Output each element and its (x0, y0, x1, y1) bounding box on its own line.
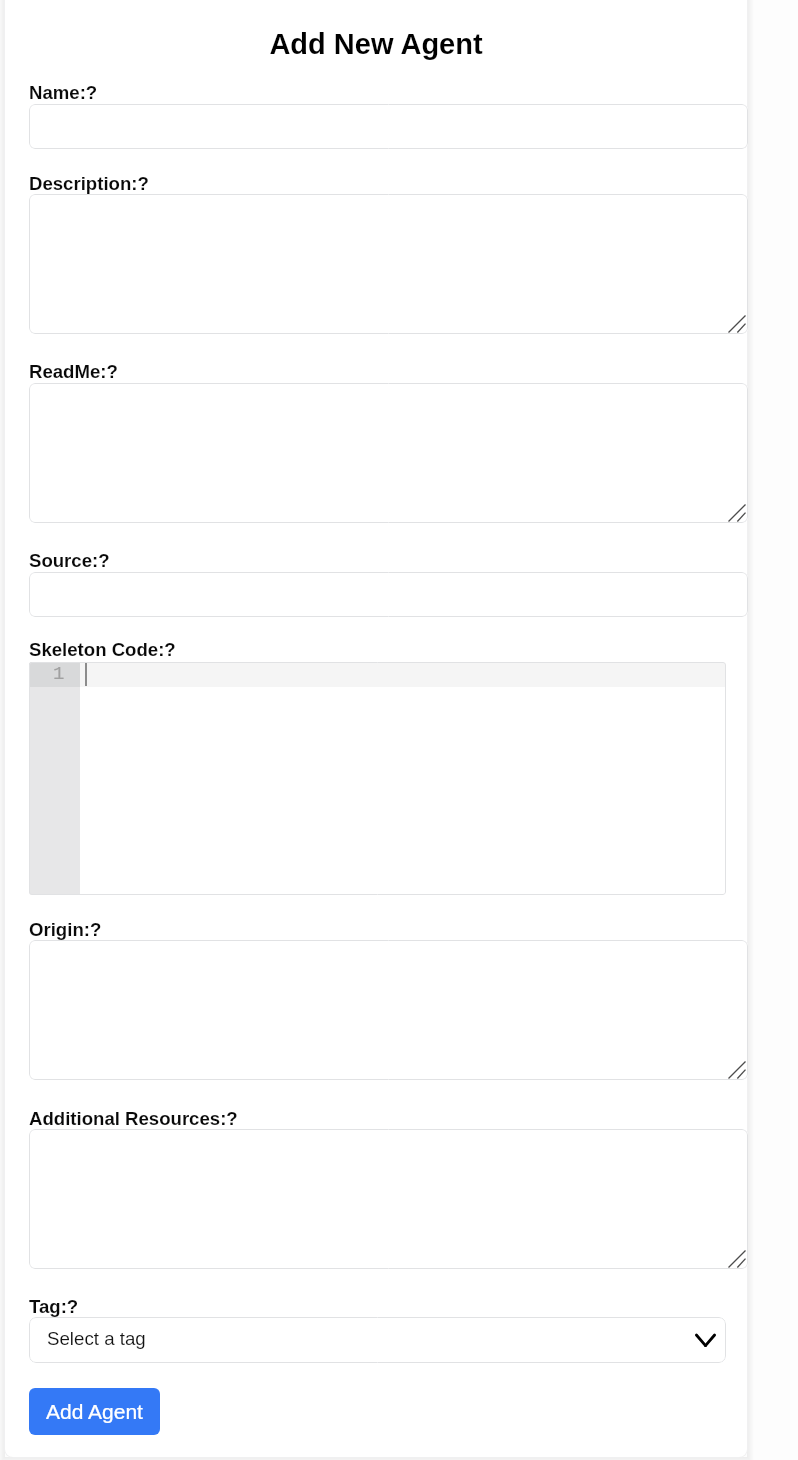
button[interactable] (29, 104, 748, 149)
staticText: Origin:? (29, 919, 102, 940)
staticText: Description:? (29, 173, 149, 194)
staticText: Add Agent (46, 1400, 143, 1423)
button[interactable] (29, 940, 748, 1080)
staticText: 1 (53, 663, 65, 685)
staticText: Add New Agent (5, 28, 747, 60)
staticText: Additional Resources:? (29, 1108, 238, 1129)
button[interactable]: Add Agent (29, 1388, 160, 1435)
button[interactable] (29, 383, 748, 523)
staticText: Skeleton Code:? (29, 639, 176, 660)
staticText: Name:? (29, 82, 98, 103)
staticText: Tag:? (29, 1296, 79, 1317)
button[interactable] (29, 572, 748, 617)
button[interactable] (29, 1129, 748, 1269)
button[interactable]: 1 (29, 662, 726, 895)
button[interactable] (29, 194, 748, 334)
staticText: Select a tag (47, 1328, 146, 1349)
button[interactable]: Select a tag (29, 1317, 726, 1363)
staticText: ReadMe:? (29, 361, 118, 382)
staticText: Source:? (29, 550, 110, 571)
other: Open tag dropdown (695, 1335, 716, 1347)
